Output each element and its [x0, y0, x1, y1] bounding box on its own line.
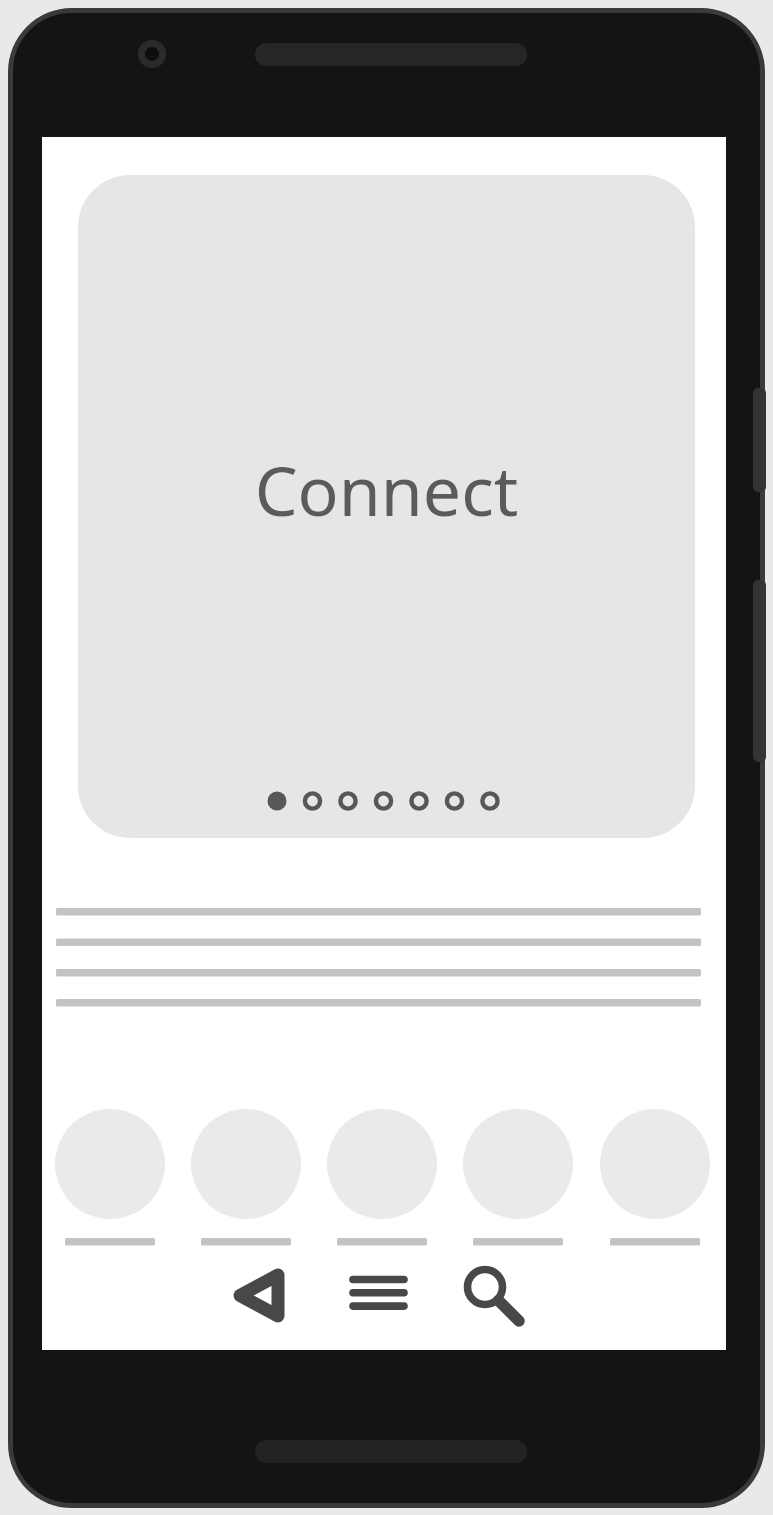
button[interactable]: Contact 4	[463, 1109, 573, 1249]
button[interactable]: Page 5	[402, 784, 436, 818]
button[interactable]: Page 6	[438, 784, 472, 818]
button[interactable]: Connect	[78, 175, 695, 838]
button[interactable]: Page 7	[473, 784, 507, 818]
button[interactable]: Contact 2	[191, 1109, 301, 1249]
staticText: Connect	[78, 443, 695, 538]
button[interactable]: Page 3	[331, 784, 365, 818]
button[interactable]: Contact 5	[600, 1109, 710, 1249]
button[interactable]: Page 4	[367, 784, 401, 818]
button[interactable]: Back	[220, 1262, 298, 1334]
button[interactable]: Menu	[340, 1262, 418, 1334]
button[interactable]: Contact 3	[327, 1109, 437, 1249]
button[interactable]: Contact 1	[55, 1109, 165, 1249]
button[interactable]: Page 2	[296, 784, 330, 818]
button[interactable]: Page 1	[260, 784, 294, 818]
button[interactable]: Search	[450, 1258, 538, 1334]
